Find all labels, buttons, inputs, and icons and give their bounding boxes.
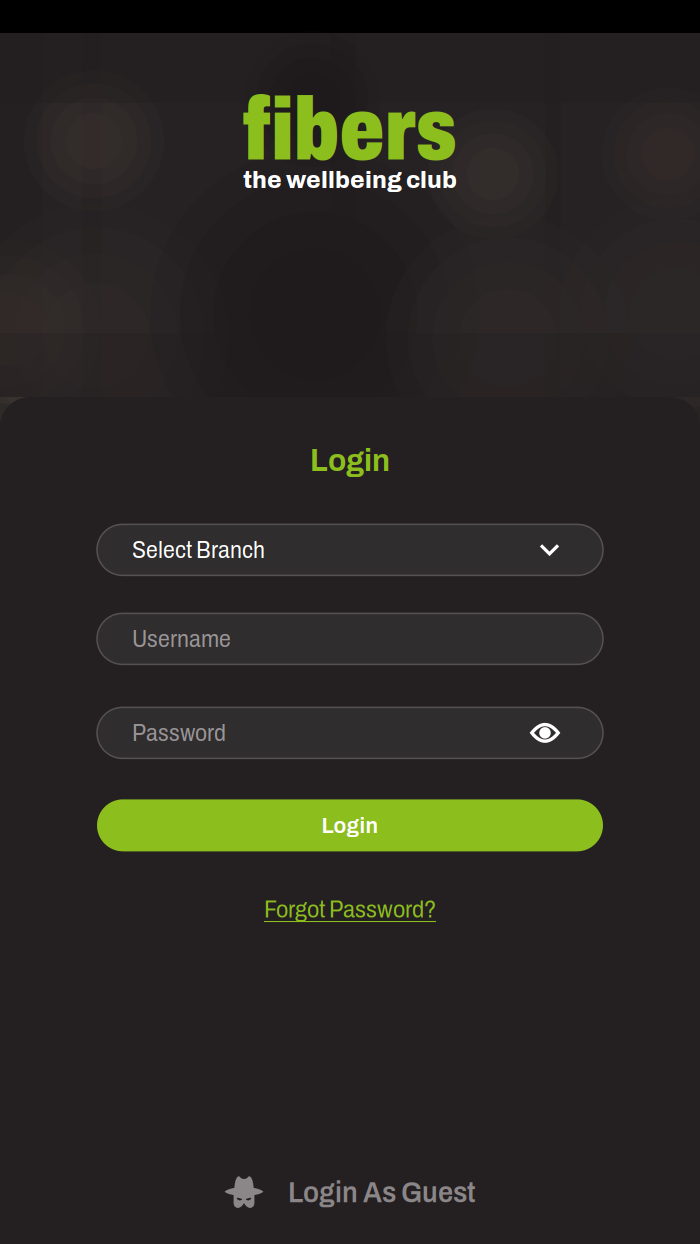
staticText: Password	[132, 720, 226, 746]
button[interactable]: Username	[97, 613, 603, 664]
staticText: Login As Guest	[288, 1176, 476, 1208]
staticText: Forgot Password?	[264, 896, 436, 922]
staticText: Login	[321, 813, 378, 838]
button[interactable]: Forgot Password?	[254, 891, 446, 927]
staticText: Username	[132, 626, 231, 652]
button[interactable]: Password	[97, 707, 603, 758]
staticText: Login	[310, 444, 390, 477]
button[interactable]: Login	[97, 799, 603, 851]
staticText: Select Branch	[132, 537, 265, 563]
staticText: fibers	[242, 81, 457, 178]
button[interactable]: Login As Guest	[212, 1168, 488, 1217]
button[interactable]: Select Branch	[97, 524, 603, 575]
staticText: the wellbeing club	[243, 167, 457, 193]
